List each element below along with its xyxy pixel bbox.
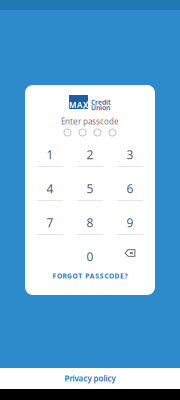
button[interactable]: 2 [70, 133, 110, 167]
staticText: Credit [91, 98, 111, 107]
staticText: 7 [46, 214, 53, 230]
button[interactable]: 0 [70, 235, 110, 269]
button[interactable]: 1 [30, 133, 70, 167]
staticText: Union [91, 103, 110, 112]
staticText: 2 [86, 146, 93, 162]
staticText: FORGOT PASSCODE? [52, 272, 128, 280]
staticText: 8 [86, 214, 93, 230]
staticText: Enter passcode [61, 116, 119, 127]
staticText: 1 [46, 146, 53, 162]
button[interactable]: 7 [30, 201, 70, 235]
button[interactable]: 3 [110, 133, 150, 167]
button[interactable]: 4 [30, 167, 70, 201]
staticText: Privacy policy [64, 373, 115, 384]
staticText: 0 [86, 248, 93, 264]
button[interactable]: 6 [110, 167, 150, 201]
staticText: 5 [86, 180, 93, 196]
button[interactable]: FORGOT PASSCODE? [25, 269, 155, 283]
staticText: 6 [126, 180, 133, 196]
button[interactable]: 5 [70, 167, 110, 201]
button[interactable]: 9 [110, 201, 150, 235]
button[interactable]: 8 [70, 201, 110, 235]
staticText: 4 [46, 180, 53, 196]
button[interactable]: Privacy policy [0, 368, 180, 389]
staticText: 9 [126, 214, 133, 230]
button[interactable]: Delete [110, 235, 150, 269]
staticText: 3 [126, 146, 133, 162]
staticText: MAX [69, 100, 88, 110]
